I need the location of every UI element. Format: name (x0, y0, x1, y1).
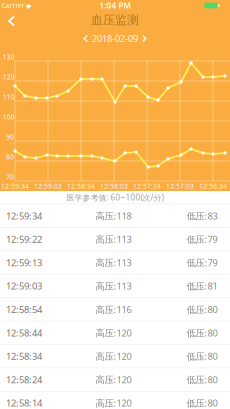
staticText: 低压:80 (186, 397, 217, 409)
staticText: 80 (6, 153, 14, 161)
staticText: 90 (6, 133, 14, 141)
staticText: 70 (6, 173, 14, 181)
staticText: 12:59:03 (6, 280, 42, 292)
staticText: 高压:120 (95, 350, 131, 362)
button[interactable]: Previous day (81, 33, 89, 43)
staticText: 1:04 PM (99, 0, 130, 11)
staticText: 医学参考值: 60~100(次/分) (66, 192, 163, 203)
staticText: 低压:79 (186, 233, 217, 245)
staticText: 12:57:34 (133, 182, 161, 191)
staticText: 12:59:03 (34, 182, 62, 191)
staticText: 高压:120 (95, 327, 131, 339)
staticText: 低压:80 (186, 303, 217, 316)
staticText: 高压:120 (95, 397, 131, 409)
staticText: 低压:80 (186, 327, 217, 339)
staticText: 低压:80 (186, 350, 217, 362)
staticText: 高压:118 (95, 210, 131, 222)
staticText: 高压:113 (95, 280, 131, 292)
staticText: 12:58:03 (100, 182, 128, 191)
staticText: Carrier (1, 1, 24, 10)
staticText: 高压:120 (95, 373, 131, 386)
staticText: 12:58:44 (6, 327, 42, 339)
staticText: 2018-02-09 (92, 32, 138, 45)
staticText: 12:59:22 (6, 233, 42, 245)
staticText: 12:58:34 (6, 350, 42, 362)
staticText: 12:57:03 (166, 182, 194, 191)
staticText: 12:56:34 (199, 182, 227, 191)
staticText: 低压:79 (186, 256, 217, 269)
staticText: 低压:81 (186, 280, 217, 292)
staticText: 12:58:24 (6, 373, 42, 386)
staticText: 低压:83 (186, 210, 217, 222)
staticText: 高压:113 (95, 256, 131, 269)
staticText: 12:58:54 (6, 303, 42, 316)
staticText: 高压:116 (95, 303, 131, 316)
staticText: 110 (3, 93, 15, 101)
staticText: 130 (3, 53, 15, 61)
staticText: 高压:113 (95, 233, 131, 245)
staticText: 血压监测 (91, 13, 139, 27)
staticText: 12:59:13 (6, 256, 42, 269)
button[interactable]: Back (3, 13, 19, 29)
staticText: 12:58:14 (6, 397, 42, 409)
staticText: 120 (3, 73, 15, 81)
button[interactable]: Next day (140, 33, 148, 43)
staticText: 12:58:34 (67, 182, 95, 191)
staticText: 12:59:34 (6, 210, 42, 222)
staticText: 100 (3, 113, 15, 121)
staticText: 12:59:34 (1, 182, 29, 191)
staticText: 低压:80 (186, 373, 217, 386)
